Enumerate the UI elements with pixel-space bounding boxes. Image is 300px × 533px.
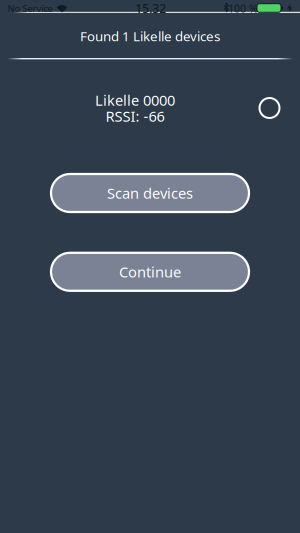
button[interactable]: Continue (51, 253, 249, 291)
staticText: Scan devices (107, 183, 193, 203)
staticText: 15.32 (135, 0, 166, 16)
staticText: Likelle 0000 (95, 90, 175, 110)
staticText: 100 % (228, 1, 258, 15)
staticText: RSSI: -66 (105, 106, 164, 126)
staticText: Continue (119, 262, 181, 282)
button[interactable]: Likelle 0000 (0, 85, 300, 130)
staticText: Found 1 Likelle devices (80, 27, 220, 45)
button[interactable]: Scan devices (51, 174, 249, 212)
staticText: No Service (7, 2, 52, 14)
